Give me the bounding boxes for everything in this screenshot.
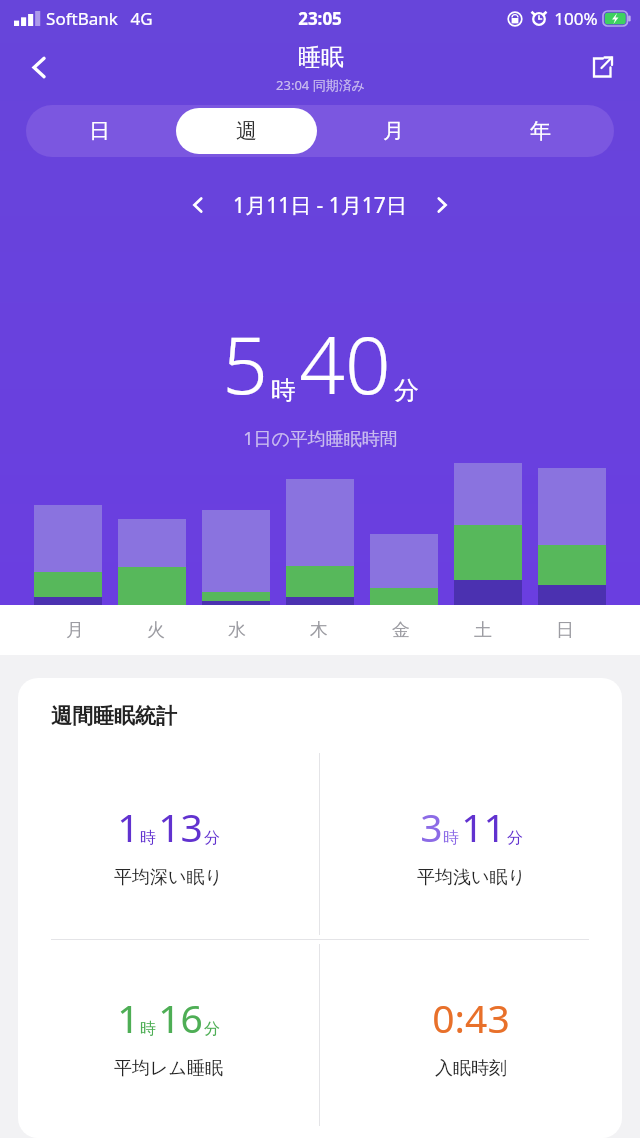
staticText: 金 [392, 619, 410, 642]
button[interactable]: Share [576, 42, 626, 92]
staticText: 週 [236, 118, 257, 144]
staticText: 11 [461, 800, 506, 853]
staticText: 時 [140, 1019, 156, 1039]
staticText: 40 [299, 308, 391, 417]
staticText: 日 [89, 118, 110, 144]
staticText: 分 [204, 828, 220, 848]
staticText: 睡眠 [298, 43, 344, 72]
staticText: 分 [394, 375, 419, 406]
staticText: 入眠時刻 [435, 1057, 507, 1080]
staticText: 年 [530, 118, 551, 144]
button[interactable]: 1 [18, 749, 319, 939]
staticText: 分 [507, 828, 523, 848]
button[interactable]: Back [14, 42, 64, 92]
staticText: 水 [228, 619, 246, 642]
staticText: 土 [474, 619, 492, 642]
button[interactable]: 0:43 [320, 940, 622, 1130]
staticText: 100% [554, 7, 598, 30]
staticText: 23:04 同期済み [276, 76, 365, 94]
staticText: 週間睡眠統計 [51, 703, 177, 729]
staticText: 月 [383, 118, 404, 144]
staticText: 平均深い眠り [114, 866, 223, 889]
staticText: 5 [222, 308, 268, 417]
button[interactable]: 3 [320, 749, 622, 939]
staticText: 3 [420, 800, 443, 853]
staticText: 時 [140, 828, 156, 848]
staticText: 1日の平均睡眠時間 [243, 426, 398, 451]
staticText: 1 [117, 991, 140, 1044]
staticText: 16 [158, 991, 203, 1044]
staticText: 13 [158, 800, 203, 853]
button[interactable]: 1 [18, 940, 319, 1130]
staticText: 時 [443, 828, 459, 848]
staticText: 時 [271, 375, 296, 406]
button[interactable]: Next week [419, 182, 465, 228]
button[interactable]: 日 [29, 108, 170, 154]
staticText: 0:43 [432, 991, 510, 1044]
staticText: 4G [130, 7, 153, 30]
staticText: SoftBank [46, 7, 118, 30]
button[interactable]: 週 [176, 108, 317, 154]
staticText: 平均浅い眠り [417, 866, 526, 889]
staticText: 月 [66, 619, 84, 642]
staticText: 火 [147, 619, 165, 642]
button[interactable]: 年 [470, 108, 611, 154]
staticText: 23:05 [298, 7, 342, 30]
staticText: 平均レム睡眠 [114, 1057, 223, 1080]
staticText: 木 [310, 619, 328, 642]
staticText: 分 [204, 1019, 220, 1039]
button[interactable]: Previous week [175, 182, 221, 228]
staticText: 1 [117, 800, 140, 853]
staticText: 1月11日 - 1月17日 [233, 191, 407, 220]
staticText: 日 [556, 619, 574, 642]
button[interactable]: 月 [323, 108, 464, 154]
